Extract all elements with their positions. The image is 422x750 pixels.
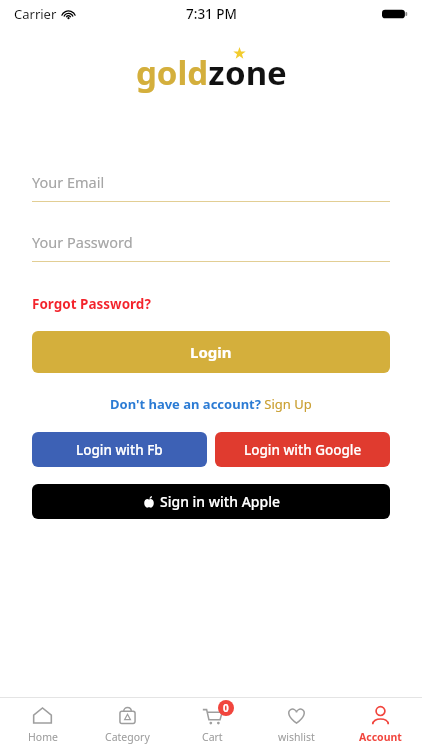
staticText: Forgot Password? — [32, 295, 151, 313]
button[interactable]: Login with Fb — [32, 432, 207, 467]
button[interactable]: Category — [85, 705, 170, 744]
staticText: Cart — [202, 730, 223, 744]
button[interactable]: Your Password — [32, 232, 390, 262]
button[interactable]: Cart — [170, 705, 254, 744]
staticText: Category — [105, 730, 150, 744]
staticText: Don't have an account? Sign Up — [110, 395, 312, 413]
staticText: Your Password — [32, 232, 133, 252]
button[interactable]: Login — [32, 331, 390, 373]
staticText: Account — [359, 730, 402, 744]
button[interactable]: Your Email — [32, 172, 390, 202]
button[interactable]: Home — [0, 705, 85, 744]
staticText: 7:31 PM — [186, 5, 237, 23]
button[interactable]: Forgot Password? — [32, 295, 151, 313]
staticText: Sign in with Apple — [160, 492, 280, 511]
button[interactable]: Sign in with Apple — [32, 484, 390, 519]
staticText: goldz — [136, 50, 225, 95]
staticText: Your Email — [32, 172, 105, 192]
staticText: one — [225, 50, 287, 95]
staticText: Home — [28, 730, 58, 744]
staticText: Login — [190, 342, 232, 362]
button[interactable]: Don't have an account? Sign Up — [0, 395, 422, 413]
staticText: Login with Google — [244, 441, 362, 459]
button[interactable]: wishlist — [254, 705, 338, 744]
staticText: wishlist — [278, 730, 315, 744]
button[interactable]: Login with Google — [215, 432, 390, 467]
staticText: Carrier — [14, 5, 57, 23]
staticText: Login with Fb — [76, 441, 163, 459]
button[interactable]: Account — [338, 705, 422, 744]
staticText: 0 — [223, 701, 229, 715]
